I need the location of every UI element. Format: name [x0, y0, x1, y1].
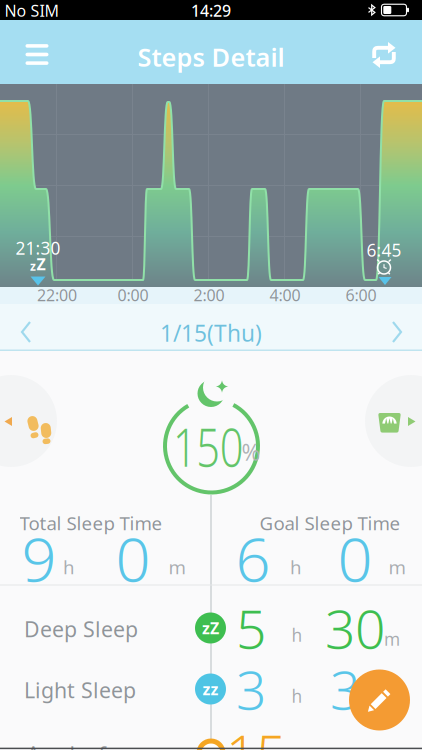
- staticText: 3: [236, 654, 266, 724]
- button[interactable]: [377, 312, 417, 352]
- staticText: Awake for: [26, 740, 127, 750]
- button[interactable]: [365, 375, 422, 467]
- staticText: h: [291, 684, 302, 707]
- staticText: 21:30: [15, 236, 60, 259]
- staticText: h: [290, 555, 302, 579]
- staticText: 14:29: [191, 0, 231, 21]
- staticText: 0: [115, 517, 150, 599]
- staticText: Steps Detail: [137, 40, 284, 74]
- staticText: 15: [226, 718, 286, 750]
- staticText: Goal Sleep Time: [259, 511, 400, 535]
- staticText: m: [168, 555, 185, 579]
- staticText: Light Sleep: [24, 676, 136, 704]
- staticText: zZ: [202, 617, 219, 639]
- button[interactable]: [369, 40, 399, 70]
- button[interactable]: [6, 312, 46, 352]
- staticText: 0: [337, 517, 372, 599]
- staticText: Z: [36, 253, 45, 275]
- staticText: No SIM: [4, 0, 59, 21]
- staticText: z: [30, 258, 36, 274]
- staticText: 3: [330, 654, 360, 724]
- staticText: m: [384, 627, 400, 650]
- staticText: h: [291, 623, 302, 646]
- staticText: 22:00: [37, 284, 77, 306]
- staticText: m: [388, 555, 405, 579]
- staticText: h: [63, 555, 75, 579]
- staticText: 9: [21, 517, 56, 599]
- staticText: zz: [202, 678, 218, 700]
- button[interactable]: [17, 36, 57, 72]
- button[interactable]: [0, 375, 57, 467]
- staticText: 1/15(Thu): [160, 318, 262, 348]
- staticText: 30: [325, 593, 385, 663]
- staticText: %: [241, 437, 260, 467]
- staticText: Deep Sleep: [24, 615, 138, 643]
- staticText: 5: [236, 593, 266, 663]
- staticText: 6:00: [345, 284, 376, 306]
- staticText: 4:00: [269, 284, 300, 306]
- staticText: Total Sleep Time: [19, 511, 162, 535]
- button[interactable]: [349, 669, 410, 730]
- staticText: 150: [163, 411, 253, 481]
- staticText: 0:00: [117, 284, 148, 306]
- staticText: 2:00: [193, 284, 224, 306]
- button[interactable]: 1/15(Thu): [160, 318, 262, 348]
- staticText: 6:45: [366, 238, 401, 261]
- staticText: 6: [235, 517, 270, 599]
